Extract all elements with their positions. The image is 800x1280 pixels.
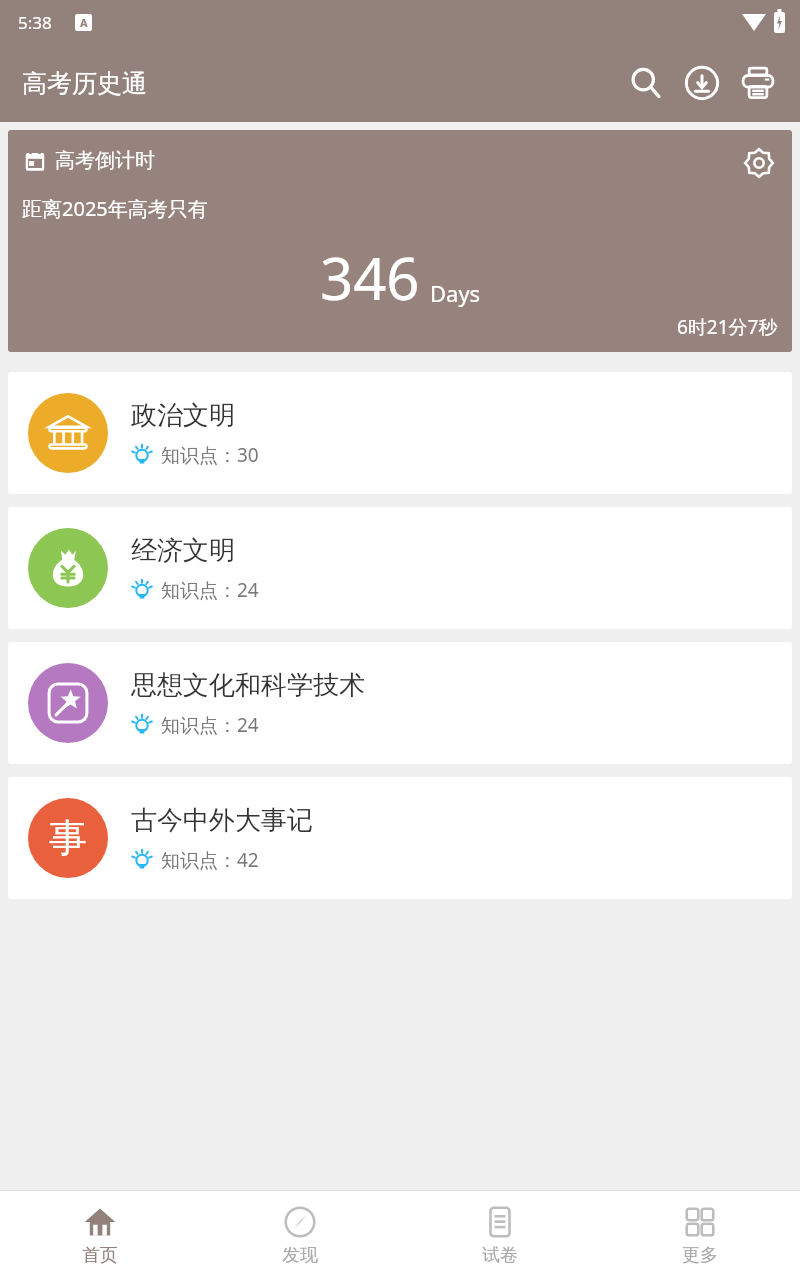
staticText: 知识点：30: [161, 442, 259, 468]
button[interactable]: 更多: [600, 1191, 800, 1280]
staticText: 346: [320, 238, 420, 317]
staticText: 知识点：24: [161, 712, 259, 738]
staticText: Days: [430, 278, 481, 308]
button[interactable]: 事: [8, 777, 792, 899]
button[interactable]: 高考倒计时: [8, 130, 792, 352]
staticText: 政治文明: [131, 399, 235, 432]
staticText: 古今中外大事记: [131, 804, 313, 837]
button[interactable]: 首页: [0, 1191, 200, 1280]
button[interactable]: 发现: [200, 1191, 400, 1280]
staticText: 5:38: [18, 11, 52, 34]
button[interactable]: Print: [730, 55, 786, 111]
button[interactable]: Search: [618, 55, 674, 111]
staticText: 距离2025年高考只有: [22, 195, 208, 222]
staticText: 高考倒计时: [55, 148, 155, 173]
staticText: 首页: [82, 1244, 118, 1267]
staticText: 知识点：42: [161, 847, 259, 873]
button[interactable]: 思想文化和科学技术: [8, 642, 792, 764]
staticText: 更多: [682, 1244, 718, 1267]
button[interactable]: 经济文明: [8, 507, 792, 629]
staticText: 试卷: [482, 1244, 518, 1267]
staticText: 思想文化和科学技术: [131, 669, 365, 702]
button[interactable]: 政治文明: [8, 372, 792, 494]
button[interactable]: Settings: [736, 140, 782, 186]
button[interactable]: Download: [674, 55, 730, 111]
staticText: 事: [49, 814, 87, 862]
staticText: 高考历史通: [22, 68, 147, 99]
staticText: 经济文明: [131, 534, 235, 567]
staticText: 知识点：24: [161, 577, 259, 603]
staticText: A: [80, 15, 88, 30]
staticText: 6时21分7秒: [677, 314, 778, 340]
staticText: 发现: [282, 1244, 318, 1267]
button[interactable]: 试卷: [400, 1191, 600, 1280]
